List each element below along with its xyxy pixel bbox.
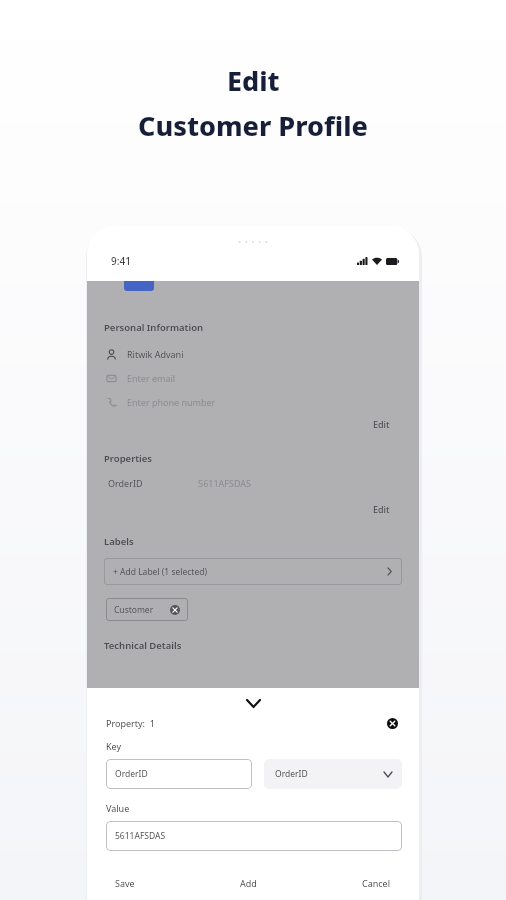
button[interactable]: + Add Label (1 selected) <box>104 558 402 585</box>
staticText: Labels <box>104 535 134 548</box>
button[interactable]: 5611AFSDAS <box>106 821 402 851</box>
staticText: 5611AFSDAS <box>115 830 166 842</box>
staticText: OrderID <box>115 768 148 780</box>
staticText: Customer <box>114 604 154 616</box>
staticText: 9:41 <box>111 254 131 268</box>
staticText: Enter email <box>127 372 176 384</box>
staticText: Customer Profile <box>138 107 368 144</box>
button[interactable]: Enter phone number <box>105 396 419 408</box>
staticText: Save <box>115 877 135 889</box>
staticText: Ritwik Advani <box>127 348 184 360</box>
button[interactable]: Edit <box>87 418 419 430</box>
staticText: Edit <box>373 503 390 515</box>
staticText: Enter phone number <box>127 396 216 408</box>
staticText: Edit <box>373 418 390 430</box>
button[interactable]: Customer <box>106 598 188 621</box>
staticText: Add <box>240 877 257 889</box>
staticText: Cancel <box>362 877 391 889</box>
staticText: Property: 1 <box>106 717 155 729</box>
button[interactable] <box>124 281 154 291</box>
staticText: OrderID <box>275 768 308 780</box>
staticText: Key <box>106 740 122 752</box>
staticText: Personal Information <box>104 321 204 334</box>
button[interactable]: Enter email <box>105 372 419 384</box>
staticText: Edit <box>227 62 280 99</box>
button[interactable]: Close <box>384 715 400 731</box>
button[interactable]: Add <box>234 873 263 893</box>
button[interactable]: Edit <box>87 503 419 515</box>
button[interactable]: Collapse <box>87 696 419 710</box>
button[interactable]: Save <box>109 873 141 893</box>
button[interactable]: Cancel <box>356 873 397 893</box>
staticText: OrderID <box>108 477 143 489</box>
button[interactable]: OrderID <box>264 759 402 789</box>
staticText: + Add Label (1 selected) <box>113 566 208 578</box>
button[interactable]: Ritwik Advani <box>105 348 419 360</box>
other: Remove label <box>170 605 180 615</box>
staticText: 5611AFSDAS <box>198 477 252 489</box>
staticText: Properties <box>104 452 153 465</box>
staticText: Technical Details <box>104 639 182 652</box>
button[interactable]: OrderID <box>106 759 252 789</box>
staticText: Value <box>106 802 130 814</box>
